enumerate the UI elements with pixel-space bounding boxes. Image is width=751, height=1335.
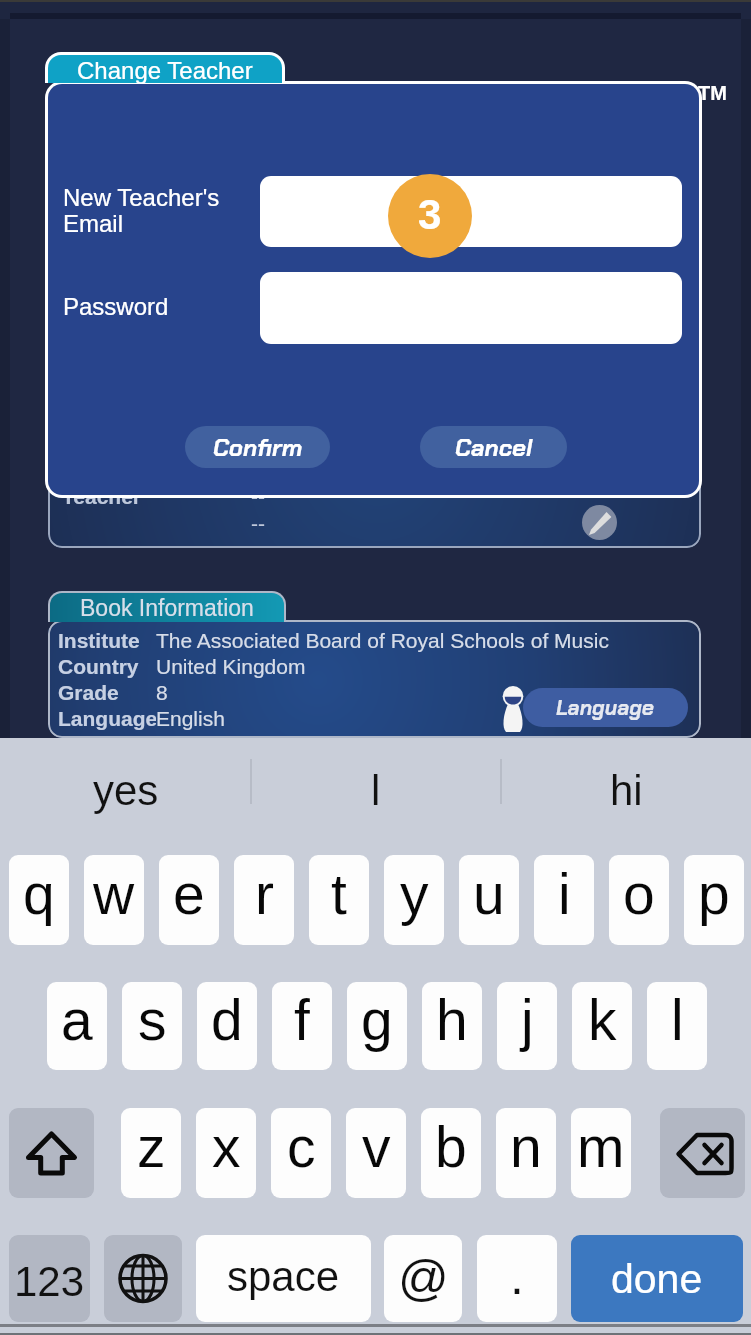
button[interactable]: u (459, 855, 519, 945)
staticText: q (23, 862, 55, 926)
staticText: p (698, 862, 730, 926)
button[interactable]: n (496, 1108, 556, 1198)
button[interactable]: r (234, 855, 294, 945)
button[interactable]: w (84, 855, 144, 945)
button[interactable]: a (47, 982, 107, 1070)
staticText: United Kingdom (156, 655, 306, 678)
staticText: v (362, 1115, 391, 1179)
staticText: n (510, 1115, 542, 1179)
staticText: Teacher (62, 485, 141, 508)
staticText: space (227, 1253, 340, 1300)
staticText: Password (63, 293, 169, 320)
button[interactable]: z (121, 1108, 181, 1198)
staticText: a (61, 988, 93, 1052)
staticText: Institute (58, 629, 140, 652)
staticText: Confirm (213, 432, 303, 463)
button[interactable]: space (196, 1235, 371, 1322)
staticText: h (436, 988, 468, 1052)
button[interactable]: i (534, 855, 594, 945)
button[interactable] (260, 272, 682, 344)
button[interactable]: s (122, 982, 182, 1070)
button[interactable]: k (572, 982, 632, 1070)
staticText: New Teacher's Email (63, 184, 220, 237)
staticText: hi (610, 767, 643, 814)
button[interactable]: Change Teacher (48, 55, 282, 83)
button[interactable]: Edit teacher (582, 505, 617, 540)
button[interactable]: f (272, 982, 332, 1070)
staticText: The Associated Board of Royal Schools of… (156, 629, 609, 652)
button[interactable]: 123 (9, 1235, 90, 1322)
button[interactable]: yes (0, 738, 251, 824)
staticText: 123 (14, 1258, 85, 1305)
staticText: e (173, 862, 205, 926)
staticText: d (211, 988, 243, 1052)
staticText: z (137, 1115, 166, 1179)
staticText: @ (398, 1250, 449, 1306)
staticText: done (611, 1256, 703, 1302)
staticText: 3 (418, 191, 442, 238)
button[interactable]: h (422, 982, 482, 1070)
staticText: t (331, 862, 347, 926)
button[interactable]: . (477, 1235, 557, 1322)
staticText: -- (251, 485, 265, 508)
button[interactable]: Language (523, 688, 688, 727)
staticText: w (93, 862, 135, 926)
staticText: Change Teacher (77, 57, 253, 83)
staticText: l (371, 767, 381, 814)
staticText: o (623, 862, 655, 926)
staticText: j (521, 988, 534, 1052)
staticText: English (156, 707, 225, 730)
staticText: r (255, 862, 274, 926)
staticText: c (287, 1115, 316, 1179)
button[interactable]: x (196, 1108, 256, 1198)
button[interactable]: Confirm (185, 426, 330, 468)
staticText: . (510, 1249, 524, 1305)
staticText: u (473, 862, 505, 926)
staticText: x (212, 1115, 241, 1179)
button[interactable]: b (421, 1108, 481, 1198)
button[interactable]: done (571, 1235, 743, 1322)
button[interactable]: t (309, 855, 369, 945)
button[interactable]: l (647, 982, 707, 1070)
staticText: s (138, 988, 167, 1052)
button[interactable]: Shift (9, 1108, 94, 1198)
staticText: -- (251, 512, 265, 535)
staticText: 8 (156, 681, 168, 704)
button[interactable]: m (571, 1108, 631, 1198)
staticText: f (294, 988, 310, 1052)
staticText: Country (58, 655, 139, 678)
staticText: yes (93, 767, 159, 814)
button[interactable] (260, 176, 682, 247)
staticText: Language (58, 707, 156, 730)
button[interactable]: e (159, 855, 219, 945)
staticText: TM (698, 82, 727, 104)
staticText: l (671, 988, 684, 1052)
button[interactable]: q (9, 855, 69, 945)
staticText: y (400, 862, 429, 926)
staticText: m (577, 1115, 625, 1179)
button[interactable]: c (271, 1108, 331, 1198)
button[interactable]: o (609, 855, 669, 945)
button[interactable]: j (497, 982, 557, 1070)
staticText: Grade (58, 681, 119, 704)
button[interactable]: d (197, 982, 257, 1070)
button[interactable]: p (684, 855, 744, 945)
button[interactable]: y (384, 855, 444, 945)
button[interactable]: v (346, 1108, 406, 1198)
staticText: Book Information (80, 595, 254, 621)
button[interactable]: g (347, 982, 407, 1070)
staticText: Cancel (455, 432, 533, 463)
button[interactable]: Backspace (660, 1108, 745, 1198)
button[interactable]: Switch keyboard language (104, 1235, 182, 1322)
button[interactable]: hi (501, 738, 751, 824)
button[interactable]: @ (384, 1235, 462, 1322)
button[interactable]: l (251, 738, 501, 824)
staticText: g (361, 988, 393, 1052)
staticText: b (435, 1115, 467, 1179)
staticText: Language (556, 694, 655, 721)
button[interactable]: Cancel (420, 426, 567, 468)
staticText: i (558, 862, 571, 926)
button[interactable]: Book Information (50, 593, 284, 622)
staticText: k (588, 988, 617, 1052)
